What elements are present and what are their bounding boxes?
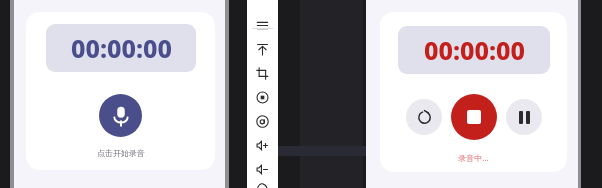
- button[interactable]: Upload: [251, 38, 274, 61]
- button[interactable]: Volume up: [251, 134, 274, 157]
- button[interactable]: Restart: [406, 99, 442, 135]
- button[interactable]: Volume down: [251, 158, 274, 181]
- staticText: 录音中...: [458, 152, 489, 163]
- button[interactable]: Stop recording: [451, 94, 497, 140]
- button[interactable]: Menu: [251, 14, 274, 37]
- staticText: 点击开始录音: [97, 148, 145, 158]
- button[interactable]: Record: [251, 86, 274, 109]
- button[interactable]: Pause: [506, 99, 542, 135]
- button[interactable]: Effects: [251, 178, 274, 188]
- button[interactable]: Mention: [251, 110, 274, 133]
- button[interactable]: Crop: [251, 62, 274, 85]
- staticText: 00:00:00: [71, 31, 172, 65]
- button[interactable]: Start recording: [99, 94, 142, 137]
- staticText: 00:00:00: [424, 33, 525, 67]
